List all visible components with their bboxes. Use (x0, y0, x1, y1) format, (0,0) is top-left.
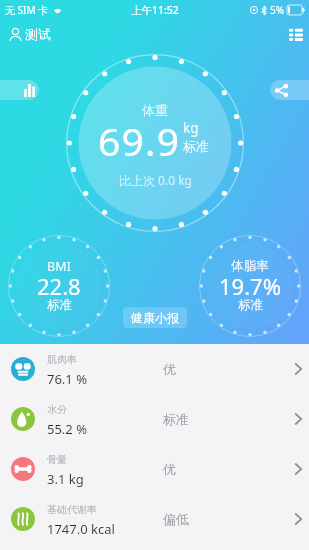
staticText: 22.8 (37, 271, 81, 301)
staticText: BMI (47, 258, 71, 275)
button[interactable]: 水分 (0, 394, 309, 444)
staticText: 水分 (47, 403, 67, 416)
staticText: 19.7% (219, 271, 281, 301)
staticText: 体脂率 (231, 258, 269, 274)
staticText: 肌肉率 (47, 353, 77, 366)
button[interactable]: Menu (289, 27, 303, 41)
staticText: 标准 (163, 411, 189, 427)
button[interactable]: 基础代谢率 (0, 494, 309, 544)
button[interactable]: Statistics (0, 80, 39, 100)
staticText: 偏低 (163, 511, 189, 527)
button[interactable]: Share (270, 80, 309, 100)
staticText: 标准 (183, 138, 209, 154)
staticText: 优 (163, 461, 176, 477)
staticText: 5% (270, 3, 285, 17)
staticText: 测试 (25, 26, 51, 42)
staticText: 标准 (238, 297, 263, 313)
staticText: 69.9 (98, 114, 181, 167)
button[interactable]: 测试 (0, 26, 51, 42)
button[interactable]: 骨量 (0, 444, 309, 494)
button[interactable]: 肌肉率 (0, 344, 309, 394)
staticText: 76.1 % (47, 370, 87, 388)
staticText: 比上次 0.0 kg (119, 172, 192, 188)
staticText: 无 SIM 卡 (5, 3, 49, 17)
staticText: 3.1 kg (47, 470, 84, 488)
staticText: 上午11:52 (131, 3, 179, 17)
staticText: 1747.0 kcal (47, 520, 115, 538)
staticText: 体重 (142, 102, 168, 118)
button[interactable]: 健康小报 (123, 307, 187, 328)
staticText: 标准 (47, 297, 72, 313)
staticText: 健康小报 (131, 310, 179, 325)
staticText: 优 (163, 361, 176, 377)
staticText: 骨量 (47, 453, 67, 466)
staticText: 基础代谢率 (47, 503, 97, 516)
staticText: kg (183, 119, 199, 137)
staticText: 55.2 % (47, 420, 87, 438)
